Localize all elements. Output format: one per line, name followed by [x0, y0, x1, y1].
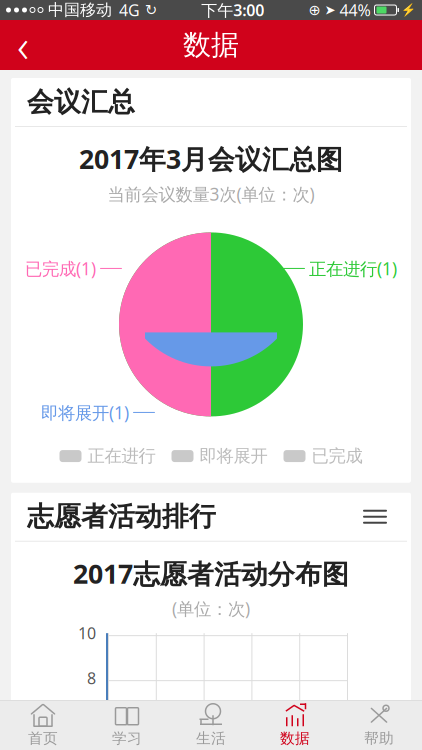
button[interactable]: 学习: [85, 701, 169, 750]
staticText: 数据: [280, 729, 310, 747]
button[interactable]: 生活: [169, 701, 253, 750]
staticText: ➤: [324, 2, 335, 17]
staticText: 已完成(1): [25, 257, 96, 280]
staticText: 正在进行: [87, 445, 155, 467]
staticText: 即将展开: [199, 445, 267, 467]
staticText: 下午3:00: [201, 0, 264, 21]
staticText: 8: [87, 667, 96, 689]
staticText: 志愿者活动排行: [27, 500, 216, 533]
staticText: (单位：次): [172, 597, 250, 620]
button[interactable]: 正在进行: [59, 441, 155, 471]
staticText: 10: [78, 622, 96, 644]
button[interactable]: 首页: [1, 701, 85, 750]
button[interactable]: 即将展开: [171, 441, 267, 471]
staticText: 正在进行(1): [309, 257, 397, 280]
staticText: ‹: [17, 15, 29, 75]
button[interactable]: 数据: [253, 701, 337, 750]
staticText: 首页: [28, 729, 58, 747]
staticText: ⚡: [401, 3, 416, 17]
staticText: 即将展开(1): [41, 401, 129, 424]
staticText: 学习: [112, 729, 142, 747]
staticText: ↻: [145, 2, 157, 18]
button[interactable]: 返回: [0, 20, 46, 70]
button[interactable]: 已完成: [283, 441, 362, 471]
staticText: ⊕: [308, 2, 320, 18]
staticText: 会议汇总: [27, 86, 135, 118]
staticText: 4G: [119, 0, 140, 21]
staticText: 当前会议数量3次(单位：次): [107, 182, 314, 205]
button[interactable]: 菜单: [355, 500, 395, 534]
staticText: 生活: [196, 729, 226, 747]
button[interactable]: 帮助: [337, 701, 421, 750]
staticText: 44%: [339, 0, 370, 21]
staticText: 已完成: [311, 445, 362, 467]
staticText: 数据: [183, 28, 239, 62]
staticText: 2017志愿者活动分布图: [73, 556, 349, 591]
staticText: 2017年3月会议汇总图: [79, 141, 343, 176]
staticText: 帮助: [364, 729, 394, 747]
staticText: 中国移动: [48, 0, 112, 20]
